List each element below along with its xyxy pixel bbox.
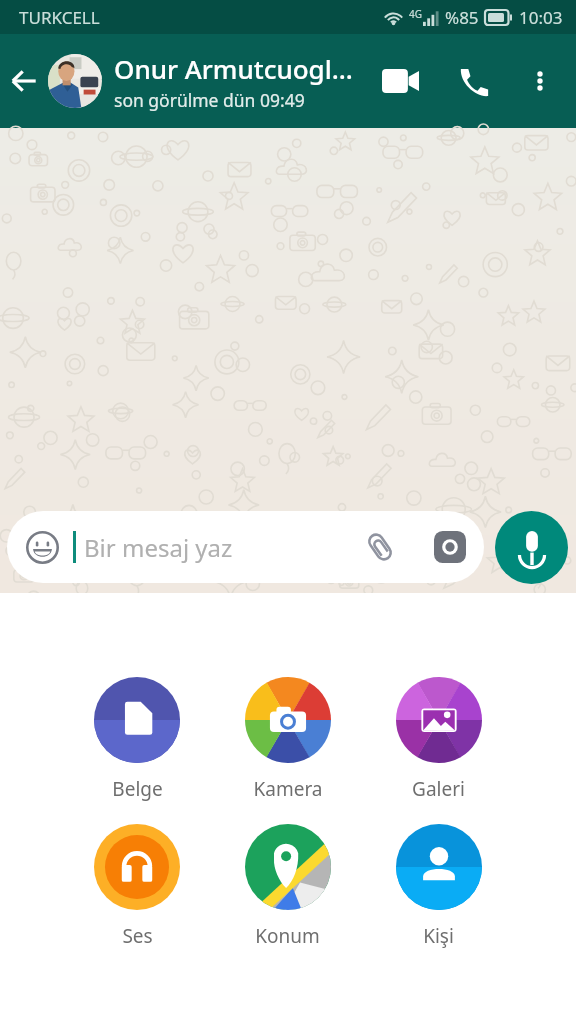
staticText: Onur Armutcuogl… <box>114 51 353 86</box>
button[interactable]: Attach <box>353 520 407 574</box>
button[interactable]: Kamera <box>212 677 363 802</box>
button[interactable]: Kişi <box>363 824 514 949</box>
button[interactable]: Voice message <box>495 511 568 584</box>
button[interactable]: Galeri <box>363 677 514 802</box>
staticText: Kamera <box>253 776 323 802</box>
staticText: Galeri <box>412 776 465 802</box>
button[interactable]: Bir mesaj yaz <box>7 511 484 583</box>
staticText: Kişi <box>423 923 454 949</box>
staticText: %85 <box>445 6 479 29</box>
staticText: TURKCELL <box>19 6 100 29</box>
button[interactable]: Voice call <box>444 51 504 111</box>
staticText: Belge <box>112 776 163 802</box>
button[interactable]: Belge <box>62 677 212 802</box>
button[interactable]: Ses <box>62 824 212 949</box>
button[interactable]: Back <box>0 57 48 105</box>
staticText: Ses <box>122 923 153 949</box>
button[interactable]: More options <box>513 51 567 111</box>
staticText: 10:03 <box>519 6 563 29</box>
button[interactable]: Konum <box>212 824 363 949</box>
button[interactable]: Video call <box>364 51 436 111</box>
staticText: Konum <box>255 923 320 949</box>
staticText: son görülme dün 09:49 <box>114 88 305 112</box>
staticText: Bir mesaj yaz <box>84 531 233 564</box>
button[interactable]: Camera <box>423 520 477 574</box>
button[interactable]: Profile photo <box>48 54 102 108</box>
staticText: 4G <box>409 7 422 21</box>
